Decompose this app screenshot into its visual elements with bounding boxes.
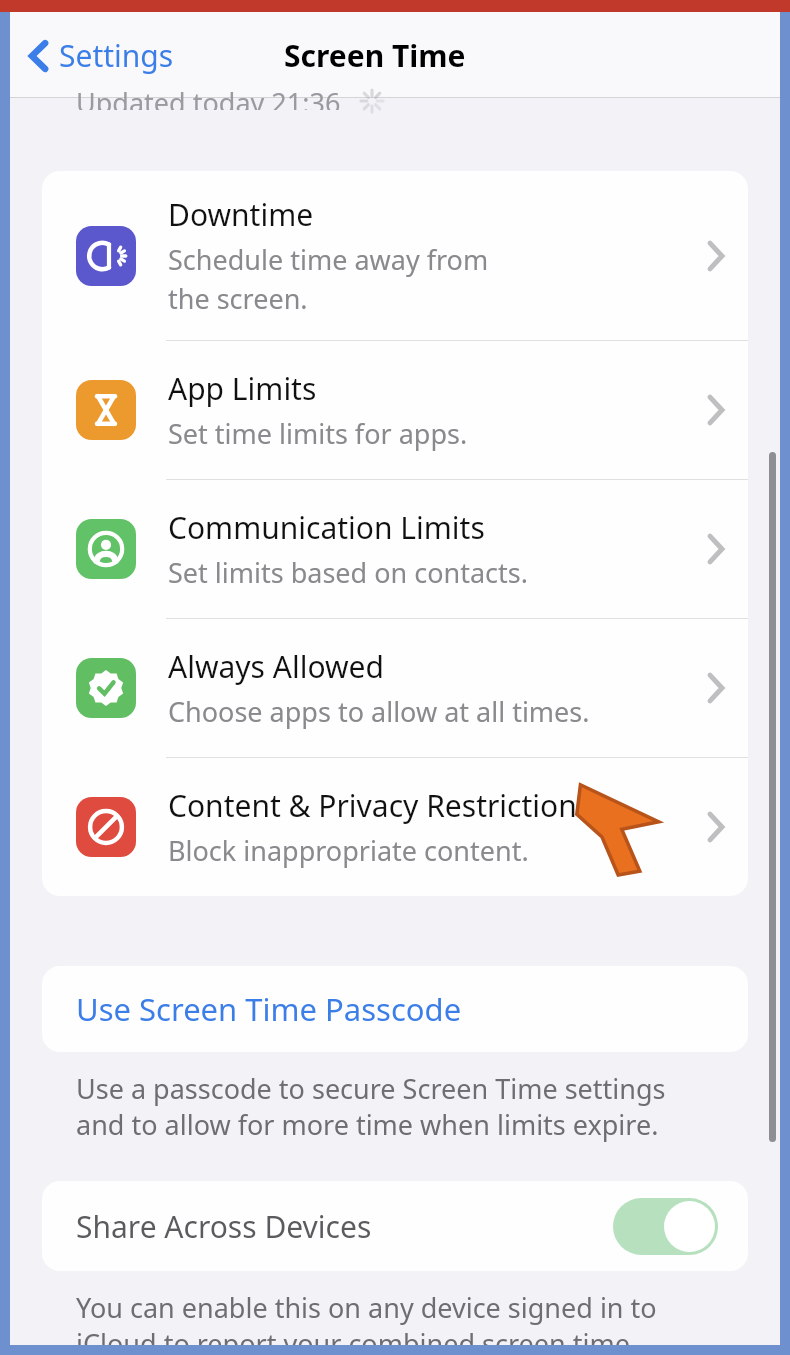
button[interactable]: Communication Limits	[42, 480, 748, 618]
staticText: Schedule time away from the screen.	[168, 241, 489, 317]
staticText: Use a passcode to secure Screen Time set…	[76, 1070, 666, 1143]
staticText: Content & Privacy Restrictions	[168, 785, 592, 826]
button[interactable]: Downtime	[42, 171, 748, 340]
button[interactable]: Always Allowed	[42, 619, 748, 757]
button[interactable]: Share Across Devices	[42, 1181, 748, 1271]
button[interactable]: Settings	[22, 29, 180, 82]
staticText: Updated today 21:36	[76, 84, 341, 110]
staticText: Communication Limits	[168, 507, 485, 548]
staticText: Settings	[59, 35, 174, 76]
staticText: Set time limits for apps.	[168, 415, 468, 452]
staticText: You can enable this on any device signed…	[76, 1289, 657, 1345]
staticText: Set limits based on contacts.	[168, 554, 528, 591]
staticText: App Limits	[168, 368, 317, 409]
button[interactable]: App Limits	[42, 341, 748, 479]
button[interactable]: Use Screen Time Passcode	[42, 966, 748, 1052]
other: Share Across Devices toggle	[613, 1198, 718, 1255]
staticText: Choose apps to allow at all times.	[168, 693, 590, 730]
staticText: Always Allowed	[168, 646, 384, 687]
staticText: Share Across Devices	[76, 1206, 372, 1247]
button[interactable]: Content & Privacy Restrictions	[42, 758, 748, 896]
staticText: Use Screen Time Passcode	[76, 988, 462, 1030]
staticText: Downtime	[168, 194, 314, 235]
staticText: Block inappropriate content.	[168, 832, 529, 869]
staticText: Screen Time	[284, 35, 466, 76]
